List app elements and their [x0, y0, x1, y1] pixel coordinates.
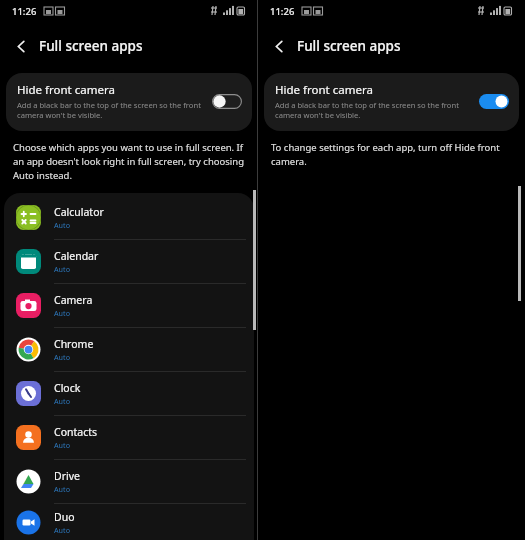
staticText: Auto: [54, 525, 70, 535]
staticText: Auto: [54, 352, 70, 362]
staticText: Auto: [54, 484, 70, 494]
button[interactable]: Back: [0, 28, 258, 64]
staticText: Auto: [54, 440, 70, 450]
button[interactable]: Drive: [4, 460, 254, 504]
button[interactable]: Back: [8, 33, 34, 59]
button[interactable]: Camera: [4, 284, 254, 328]
staticText: Choose which apps you want to use in ful…: [13, 141, 245, 182]
staticText: Camera: [54, 293, 93, 307]
button[interactable]: Back: [266, 33, 292, 59]
staticText: Full screen apps: [297, 37, 401, 55]
button[interactable]: Calculator: [4, 196, 254, 240]
button[interactable]: Chrome: [4, 328, 254, 372]
staticText: Chrome: [54, 337, 94, 351]
staticText: Auto: [54, 396, 70, 406]
staticText: Hide front camera: [275, 82, 373, 98]
staticText: Hide front camera: [17, 82, 115, 98]
staticText: Clock: [54, 381, 81, 395]
button[interactable]: Clock: [4, 372, 254, 416]
button[interactable]: Hide front camera: [264, 73, 519, 131]
staticText: 11:26: [12, 5, 37, 18]
staticText: Auto: [54, 220, 70, 230]
staticText: Auto: [54, 264, 70, 274]
staticText: Duo: [54, 510, 75, 524]
staticText: Calculator: [54, 205, 104, 219]
button[interactable]: Hide front camera: [6, 73, 252, 131]
button[interactable]: Back: [258, 28, 525, 64]
staticText: Contacts: [54, 425, 98, 439]
staticText: 11:26: [270, 5, 295, 18]
button[interactable]: Duo: [4, 504, 254, 540]
button[interactable]: Hide front camera off: [212, 94, 242, 109]
staticText: To change settings for each app, turn of…: [271, 141, 512, 168]
button[interactable]: Calendar: [4, 240, 254, 284]
button[interactable]: Hide front camera on: [479, 94, 509, 109]
staticText: Full screen apps: [39, 37, 143, 55]
button[interactable]: Contacts: [4, 416, 254, 460]
staticText: Calendar: [54, 249, 99, 263]
staticText: Drive: [54, 469, 80, 483]
staticText: Add a black bar to the top of the screen…: [17, 100, 204, 120]
staticText: Add a black bar to the top of the screen…: [275, 100, 471, 120]
staticText: Auto: [54, 308, 70, 318]
